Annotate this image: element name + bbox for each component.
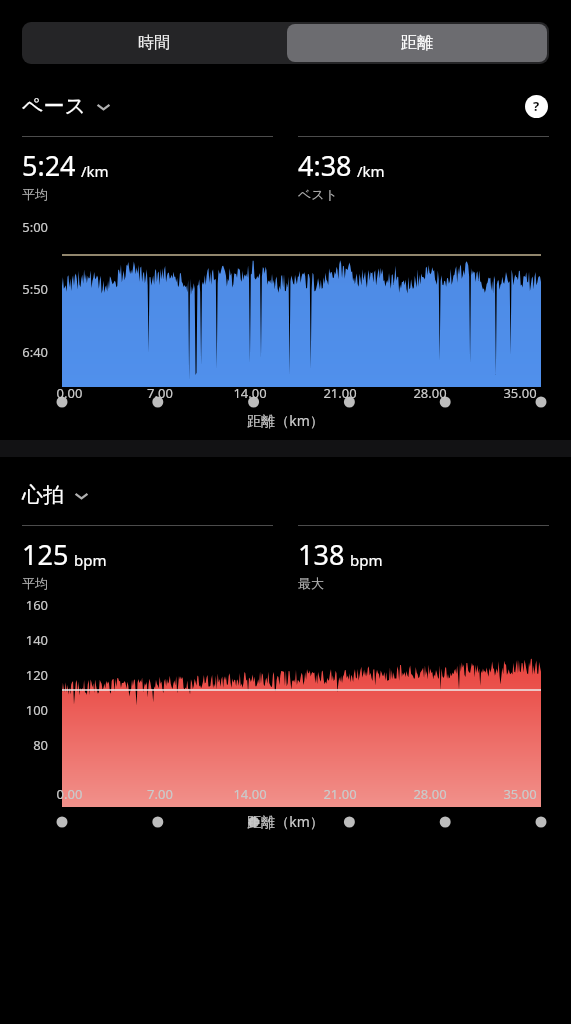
button[interactable]: 時間 [22,22,285,64]
button[interactable]: 138 [298,525,549,591]
staticText: 最大 [298,575,324,591]
staticText: 7.00 [115,384,205,402]
staticText: 138 [298,536,345,573]
button[interactable]: 距離 [287,24,547,62]
staticText: 4:38 [298,147,352,184]
staticText: /km [357,161,385,181]
staticText: 5:50 [0,280,48,298]
staticText: 100 [0,701,48,719]
staticText: 6:40 [0,343,48,361]
staticText: 21.00 [295,785,385,803]
staticText: 80 [0,736,48,754]
staticText: 35.00 [475,785,565,803]
staticText: 120 [0,666,48,684]
button[interactable]: ペース [22,93,112,119]
staticText: 28.00 [385,785,475,803]
staticText: 125 [22,536,69,573]
staticText: 距離（km） [0,411,571,430]
staticText: 0.00 [24,785,115,803]
staticText: 140 [0,631,48,649]
staticText: 時間 [138,33,170,53]
staticText: 5:24 [22,147,76,184]
staticText: 14.00 [205,384,295,402]
staticText: 160 [0,596,48,614]
button[interactable]: 心拍 [22,482,90,508]
staticText: /km [81,161,109,181]
button[interactable]: 5:24 [22,136,273,202]
staticText: 平均 [22,575,48,591]
staticText: 21.00 [295,384,385,402]
staticText: 14.00 [205,785,295,803]
button[interactable]: 125 [22,525,273,591]
staticText: 心拍 [22,482,64,508]
staticText: 距離 [401,33,433,53]
staticText: 平均 [22,186,48,202]
staticText: ペース [22,93,86,119]
staticText: bpm [74,550,107,570]
staticText: 7.00 [115,785,205,803]
staticText: ? [533,97,540,115]
staticText: bpm [350,550,383,570]
staticText: 35.00 [475,384,565,402]
staticText: ベスト [298,186,338,202]
button[interactable]: 4:38 [298,136,549,202]
staticText: 距離（km） [0,812,571,831]
staticText: 28.00 [385,384,475,402]
staticText: 0.00 [24,384,115,402]
staticText: 5:00 [0,218,48,236]
button[interactable]: Help [523,93,549,119]
